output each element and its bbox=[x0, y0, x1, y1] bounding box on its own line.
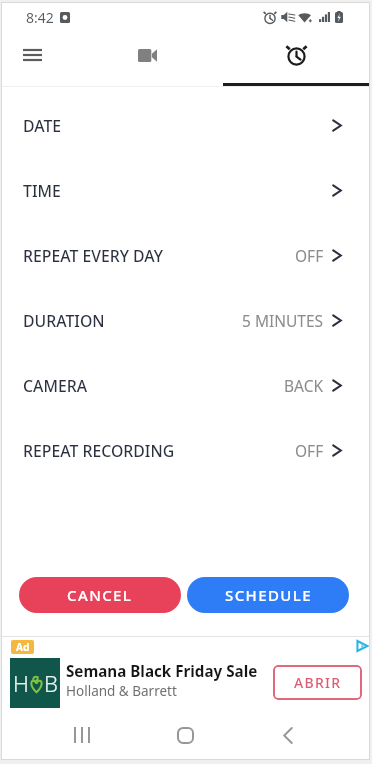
staticText: Semana Black Friday Sale bbox=[66, 661, 258, 682]
button[interactable]: REPEAT RECORDING bbox=[1, 418, 370, 483]
staticText: H bbox=[13, 668, 29, 698]
button[interactable]: DURATION bbox=[1, 288, 370, 353]
staticText: DATE bbox=[23, 115, 62, 137]
staticText: CANCEL bbox=[67, 585, 133, 605]
staticText: REPEAT RECORDING bbox=[23, 440, 175, 462]
staticText: OFF bbox=[295, 440, 324, 461]
button[interactable]: Scheduled recordings bbox=[223, 32, 370, 87]
staticText: B bbox=[44, 668, 58, 698]
staticText: Ad bbox=[16, 640, 30, 654]
button[interactable]: CANCEL bbox=[19, 577, 181, 613]
staticText: Holland & Barrett bbox=[66, 682, 177, 700]
staticText: 5 MINUTES bbox=[242, 310, 324, 331]
button[interactable]: Menu bbox=[1, 32, 63, 87]
button[interactable]: Back bbox=[266, 713, 310, 757]
other: Ad choices bbox=[356, 640, 368, 652]
button[interactable]: SCHEDULE bbox=[187, 577, 349, 613]
button[interactable]: TIME bbox=[1, 158, 370, 223]
button[interactable]: Recent apps bbox=[60, 713, 104, 757]
staticText: 8:42 bbox=[26, 8, 54, 27]
button[interactable]: Record video bbox=[63, 32, 223, 87]
staticText: REPEAT EVERY DAY bbox=[23, 245, 163, 267]
staticText: DURATION bbox=[23, 310, 105, 332]
staticText: TIME bbox=[23, 180, 61, 202]
staticText: CAMERA bbox=[23, 375, 88, 397]
button[interactable]: CAMERA bbox=[1, 353, 370, 418]
button[interactable]: REPEAT EVERY DAY bbox=[1, 223, 370, 288]
staticText: BACK bbox=[284, 375, 324, 396]
button[interactable]: ABRIR bbox=[273, 665, 362, 700]
button[interactable]: Home bbox=[163, 713, 207, 757]
staticText: OFF bbox=[295, 245, 324, 266]
staticText: ABRIR bbox=[294, 673, 342, 692]
staticText: SCHEDULE bbox=[225, 585, 312, 605]
button[interactable]: DATE bbox=[1, 93, 370, 158]
